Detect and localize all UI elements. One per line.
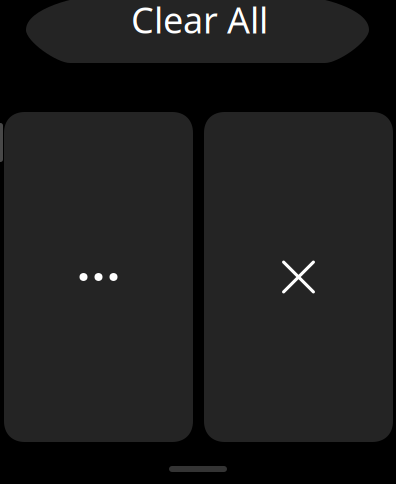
button[interactable]: Clear All [26,0,369,63]
button[interactable]: More options [4,112,193,442]
staticText: Clear All [131,0,268,43]
button[interactable]: Close app [204,112,393,442]
